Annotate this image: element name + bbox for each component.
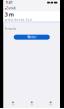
staticText: Zurück xyxy=(6,6,15,10)
staticText: 3 m xyxy=(5,11,14,18)
button[interactable]: Mehr xyxy=(41,99,60,108)
staticText: Start xyxy=(11,104,14,106)
button[interactable]: Back xyxy=(3,5,17,11)
staticText: 9:41 xyxy=(6,1,13,4)
button[interactable]: Liste xyxy=(22,99,41,108)
staticText: ‹ xyxy=(5,6,6,11)
button[interactable]: Weiter xyxy=(14,35,50,40)
button[interactable]: Start xyxy=(3,99,22,108)
staticText: Mehr xyxy=(49,104,53,106)
staticText: Liste xyxy=(30,104,33,106)
staticText: verbleibende Zeit xyxy=(5,18,32,22)
staticText: Weiter xyxy=(27,35,36,39)
staticText: Formular xyxy=(5,27,16,31)
